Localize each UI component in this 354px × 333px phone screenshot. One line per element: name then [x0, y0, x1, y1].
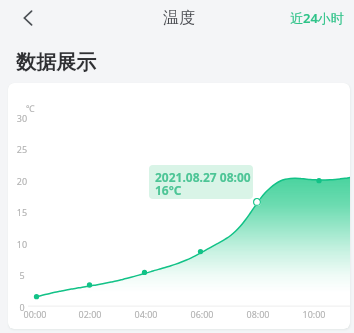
staticText: 15 [12, 206, 32, 218]
staticText: 数据展示 [16, 50, 96, 75]
staticText: 近24小时 [290, 9, 344, 27]
staticText: 5 [12, 269, 32, 281]
staticText: 30 [12, 112, 32, 124]
staticText: 00:00 [19, 308, 51, 320]
staticText: 温度 [163, 8, 195, 28]
staticText: ℃ [26, 102, 35, 114]
staticText: 25 [12, 143, 32, 155]
staticText: 04:00 [130, 308, 162, 320]
staticText: 10 [12, 238, 32, 250]
staticText: 08:00 [242, 308, 274, 320]
staticText: 10:00 [298, 308, 330, 320]
staticText: 0 [12, 301, 32, 313]
staticText: 02:00 [74, 308, 106, 320]
staticText: 20 [12, 175, 32, 187]
button[interactable]: Back [11, 1, 45, 35]
button[interactable]: 近24小时 [278, 3, 354, 33]
staticText: 06:00 [186, 308, 218, 320]
staticText: 2021.08.27 08:00 16°C [155, 169, 251, 199]
